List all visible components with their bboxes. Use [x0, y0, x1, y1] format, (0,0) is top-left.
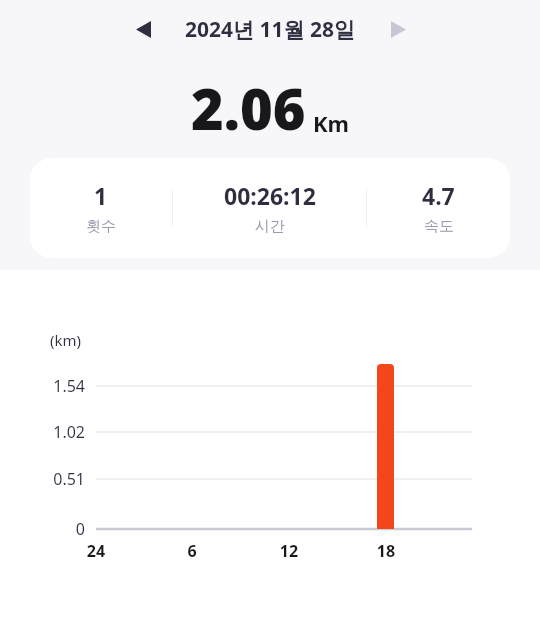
- button[interactable]: Previous day: [121, 7, 165, 51]
- staticText: 00:26:12: [224, 180, 316, 211]
- staticText: Km: [313, 108, 350, 138]
- staticText: 2.06: [191, 70, 306, 146]
- staticText: 12: [259, 540, 319, 562]
- staticText: 속도: [424, 217, 454, 236]
- staticText: 1.02: [20, 421, 85, 443]
- staticText: 1: [94, 180, 108, 211]
- staticText: 4.7: [422, 180, 455, 211]
- button[interactable]: 1: [30, 158, 510, 258]
- staticText: 0.51: [20, 468, 85, 490]
- staticText: 1.54: [20, 375, 85, 397]
- staticText: 18: [356, 540, 416, 562]
- staticText: 시간: [255, 217, 285, 236]
- staticText: 0: [20, 518, 85, 540]
- staticText: 2024년 11월 28일: [185, 15, 356, 44]
- staticText: 24: [66, 540, 126, 562]
- staticText: 횟수: [86, 217, 116, 236]
- staticText: (km): [50, 330, 82, 350]
- button[interactable]: Next day: [376, 7, 420, 51]
- staticText: 6: [162, 540, 222, 562]
